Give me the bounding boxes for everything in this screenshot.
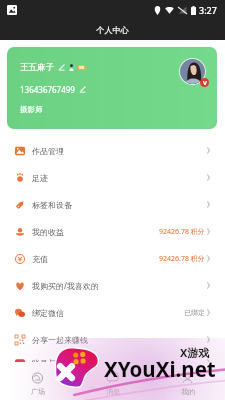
button[interactable]: 账号与安全 (0, 353, 225, 372)
staticText: 王五麻子 (20, 62, 54, 73)
staticText: 已绑定 (184, 308, 205, 317)
button[interactable]: 足迹 (0, 164, 225, 191)
staticText: 我的 (181, 387, 195, 396)
button[interactable]: 消息 (75, 362, 150, 400)
staticText: 我购买的/我喜欢的 (32, 280, 99, 291)
button[interactable]: 绑定微信 (0, 299, 225, 326)
button[interactable]: 分享一起来赚钱 (0, 326, 225, 353)
button[interactable]: 我的收益 (0, 218, 225, 245)
other: Edit phone (79, 86, 86, 93)
staticText: 个人中心 (96, 25, 129, 35)
staticText: 3:27 (199, 4, 217, 16)
button[interactable]: 标签和设备 (0, 191, 225, 218)
staticText: 92426.78 积分 (159, 254, 205, 264)
staticText: 标签和设备 (32, 200, 72, 210)
staticText: 充值 (32, 254, 48, 264)
staticText: 我的收益 (32, 227, 64, 237)
staticText: 足迹 (32, 173, 48, 183)
button[interactable]: 广场 (0, 362, 75, 400)
staticText: 广场 (31, 387, 45, 396)
button[interactable]: 作品管理 (0, 137, 225, 164)
other: Edit name (58, 64, 65, 71)
button[interactable]: 充值 (0, 245, 225, 272)
staticText: 92426.78 积分 (159, 227, 205, 237)
staticText: V (203, 79, 207, 87)
staticText: 消息 (106, 387, 120, 396)
staticText: X游戏 (180, 345, 210, 360)
staticText: 账号与安全 (32, 358, 72, 368)
staticText: 绑定微信 (32, 308, 64, 318)
staticText: 136436767499 (20, 84, 75, 95)
button[interactable]: 王五麻子 (7, 47, 217, 129)
staticText: 作品管理 (32, 146, 64, 156)
button[interactable]: 我的 (150, 362, 225, 400)
staticText: 分享一起来赚钱 (32, 335, 88, 345)
button[interactable]: 我购买的/我喜欢的 (0, 272, 225, 299)
staticText: XYouXi.net (104, 355, 216, 383)
staticText: 摄影师 (20, 105, 43, 114)
